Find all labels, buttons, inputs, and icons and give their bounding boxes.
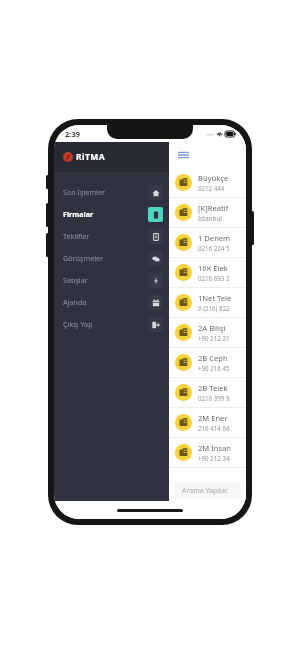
staticText: Büyükçe: [198, 173, 229, 183]
staticText: +90 212 34: [198, 454, 230, 462]
button[interactable]: Arama Yapılac: [174, 483, 241, 499]
staticText: 1Net Tele: [198, 293, 232, 303]
button[interactable]: Menu: [175, 147, 191, 163]
staticText: Çıkış Yap: [63, 319, 148, 329]
staticText: Firmalar: [63, 209, 148, 219]
staticText: 2:39: [65, 129, 80, 139]
staticText: 2B Telek: [198, 383, 228, 393]
button[interactable]: Son İşlemler: [54, 181, 169, 203]
button[interactable]: Çıkış Yap: [54, 313, 169, 335]
button[interactable]: 2A Bilişi: [169, 318, 246, 348]
button[interactable]: 2M İnsan: [169, 438, 246, 468]
button[interactable]: [K]Reatif: [169, 198, 246, 228]
button[interactable]: Teklifler: [54, 225, 169, 247]
staticText: İstanbul: [198, 214, 222, 222]
staticText: RiTMA: [76, 151, 105, 163]
staticText: [K]Reatif: [198, 203, 229, 213]
staticText: 1 Denem: [198, 233, 231, 243]
staticText: 0216 693 2: [198, 274, 230, 282]
staticText: +90 212 21: [198, 334, 230, 342]
button[interactable]: Büyükçe: [169, 168, 246, 198]
staticText: 2M İnsan: [198, 443, 232, 453]
staticText: Arama Yapılac: [182, 486, 229, 496]
button[interactable]: 16K Elek: [169, 258, 246, 288]
staticText: 0216 399 9: [198, 394, 230, 402]
staticText: Görüşmeler: [63, 253, 148, 263]
button[interactable]: 2B Ceph: [169, 348, 246, 378]
staticText: Teklifler: [63, 231, 148, 241]
staticText: 0 (216) 822: [198, 304, 230, 312]
staticText: 2A Bilişi: [198, 323, 226, 333]
staticText: 16K Elek: [198, 263, 228, 273]
staticText: 2B Ceph: [198, 353, 228, 363]
button[interactable]: 2B Telek: [169, 378, 246, 408]
staticText: 216 414 64: [198, 424, 230, 432]
button[interactable]: Firmalar: [54, 203, 169, 225]
staticText: 0212 444: [198, 184, 226, 192]
staticText: +90 216 45: [198, 364, 230, 372]
button[interactable]: Ajanda: [54, 291, 169, 313]
button[interactable]: 2M Ener: [169, 408, 246, 438]
staticText: 0216 224 5: [198, 244, 230, 252]
staticText: Ajanda: [63, 297, 148, 307]
button[interactable]: 1Net Tele: [169, 288, 246, 318]
staticText: 2M Ener: [198, 413, 228, 423]
button[interactable]: Satışlar: [54, 269, 169, 291]
staticText: Satışlar: [63, 275, 148, 285]
staticText: Son İşlemler: [63, 187, 148, 197]
button[interactable]: Görüşmeler: [54, 247, 169, 269]
button[interactable]: 1 Denem: [169, 228, 246, 258]
